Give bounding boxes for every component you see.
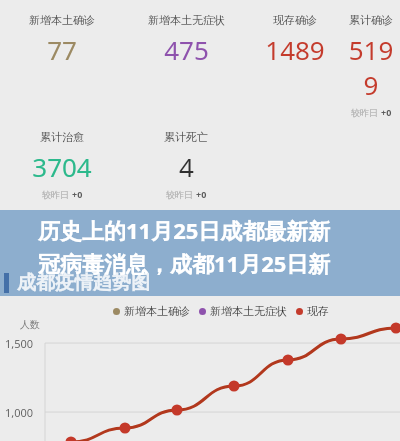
staticText: 1489 bbox=[265, 32, 325, 67]
button[interactable]: 新增本土确诊 bbox=[113, 304, 190, 318]
staticText: 1,000 bbox=[5, 405, 34, 420]
staticText: 5199 bbox=[342, 32, 400, 102]
staticText: 较昨日 bbox=[351, 106, 381, 118]
staticText: 人数 bbox=[20, 318, 40, 331]
button[interactable]: 累计死亡 bbox=[124, 130, 248, 200]
staticText: 新增本土无症状 bbox=[148, 13, 225, 27]
staticText: +0 bbox=[381, 106, 392, 118]
staticText: 3704 bbox=[32, 149, 92, 184]
staticText: 新增本土无症状 bbox=[210, 304, 287, 318]
button[interactable]: 现存 bbox=[296, 304, 329, 318]
staticText: 77 bbox=[47, 32, 77, 67]
staticText: +0 bbox=[196, 188, 207, 200]
staticText: 历史上的11月25日成都最新新 bbox=[38, 215, 331, 245]
staticText: +0 bbox=[72, 188, 83, 200]
staticText: 新增本土确诊 bbox=[29, 13, 95, 27]
staticText: 累计死亡 bbox=[164, 130, 208, 144]
staticText: 新增本土确诊 bbox=[124, 304, 190, 318]
staticText: 现存 bbox=[307, 304, 329, 318]
staticText: 累计确诊 bbox=[349, 13, 393, 27]
staticText: 现存确诊 bbox=[273, 13, 317, 27]
staticText: 成都疫情趋势图 bbox=[17, 271, 150, 295]
button[interactable]: 累计确诊 bbox=[342, 13, 400, 118]
staticText: 较昨日 bbox=[42, 188, 72, 200]
staticText: 较昨日 bbox=[166, 188, 196, 200]
staticText: 1,500 bbox=[5, 336, 34, 351]
staticText: 475 bbox=[164, 32, 209, 67]
button[interactable]: 现存确诊 bbox=[248, 13, 342, 67]
button[interactable]: 新增本土无症状 bbox=[124, 13, 248, 67]
button[interactable]: 新增本土确诊 bbox=[0, 13, 124, 67]
button[interactable]: 历史上的11月25日成都最新新 bbox=[38, 215, 331, 278]
button[interactable]: 累计治愈 bbox=[0, 130, 124, 200]
button[interactable]: 新增本土无症状 bbox=[199, 304, 287, 318]
staticText: 冠病毒消息，成都11月25日新 bbox=[38, 248, 331, 278]
staticText: 累计治愈 bbox=[40, 130, 84, 144]
staticText: 4 bbox=[179, 149, 194, 184]
